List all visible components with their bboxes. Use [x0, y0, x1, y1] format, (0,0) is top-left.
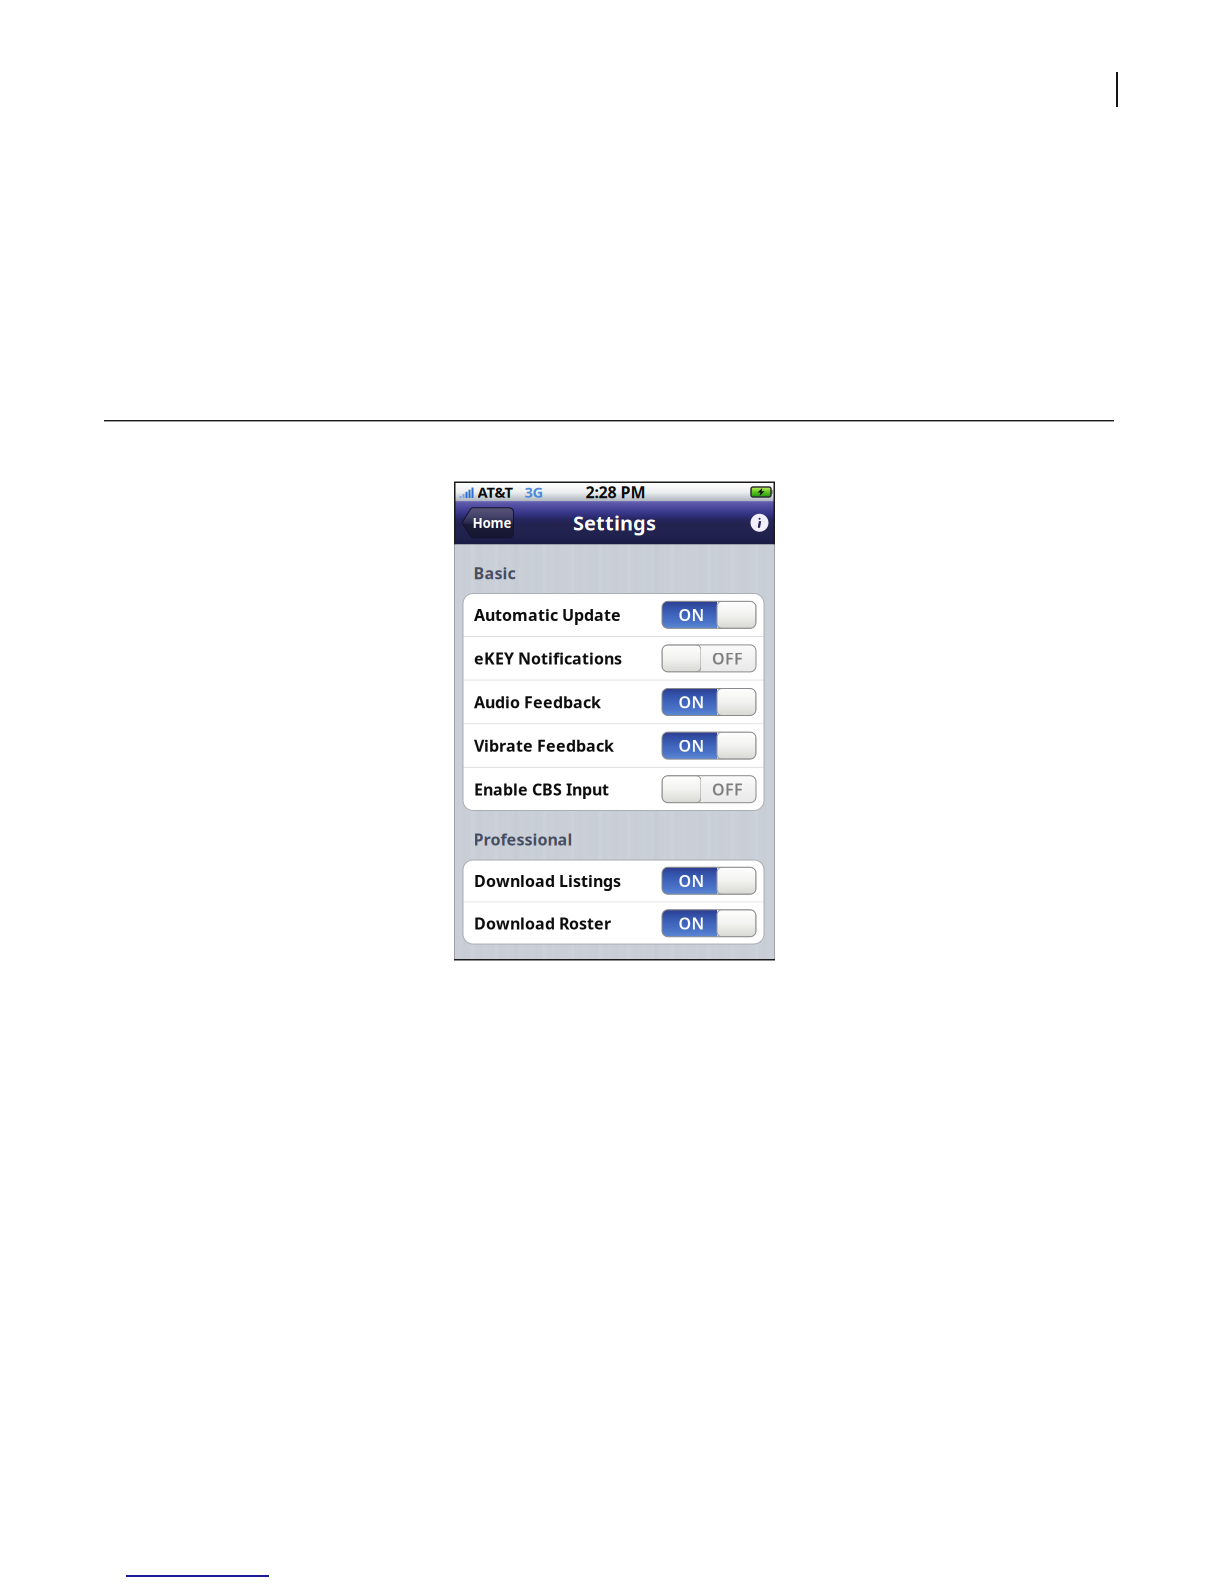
staticText: Basic: [473, 562, 515, 584]
button[interactable]: ON: [662, 688, 756, 715]
staticText: 3G: [512, 482, 543, 502]
staticText: ON: [678, 870, 704, 891]
staticText: Professional: [473, 829, 572, 850]
button[interactable]: eKEY Notifications: [463, 637, 764, 680]
button[interactable]: OFF: [662, 645, 756, 672]
staticText: OFF: [712, 779, 743, 800]
staticText: Download Roster: [474, 913, 611, 934]
staticText: ON: [678, 735, 704, 756]
staticText: Vibrate Feedback: [474, 735, 614, 756]
staticText: ON: [678, 913, 704, 934]
button[interactable]: ON: [662, 910, 756, 937]
staticText: ON: [678, 691, 704, 713]
staticText: eKEY Notifications: [474, 648, 622, 669]
staticText: AT&T: [477, 482, 512, 502]
button[interactable]: ON: [662, 601, 756, 628]
button[interactable]: Enable CBS Input: [463, 768, 764, 810]
button[interactable]: Download Roster: [463, 902, 764, 944]
button[interactable]: Audio Feedback: [463, 681, 764, 723]
staticText: Settings: [573, 509, 656, 536]
staticText: 2:28 PM: [585, 481, 645, 503]
staticText: Home: [472, 514, 511, 532]
staticText: ON: [678, 604, 704, 625]
staticText: Audio Feedback: [474, 691, 601, 713]
staticText: OFF: [712, 648, 743, 669]
staticText: Enable CBS Input: [474, 779, 609, 800]
staticText: Download Listings: [474, 870, 621, 891]
button[interactable]: Home: [461, 508, 513, 538]
button[interactable]: ON: [662, 867, 756, 894]
staticText: Automatic Update: [474, 604, 621, 625]
button[interactable]: Vibrate Feedback: [463, 724, 764, 767]
button[interactable]: ON: [662, 732, 756, 759]
button[interactable]: Info: [749, 511, 769, 535]
button[interactable]: OFF: [662, 776, 756, 803]
button[interactable]: Automatic Update: [463, 593, 764, 636]
button[interactable]: Download Listings: [463, 860, 764, 901]
